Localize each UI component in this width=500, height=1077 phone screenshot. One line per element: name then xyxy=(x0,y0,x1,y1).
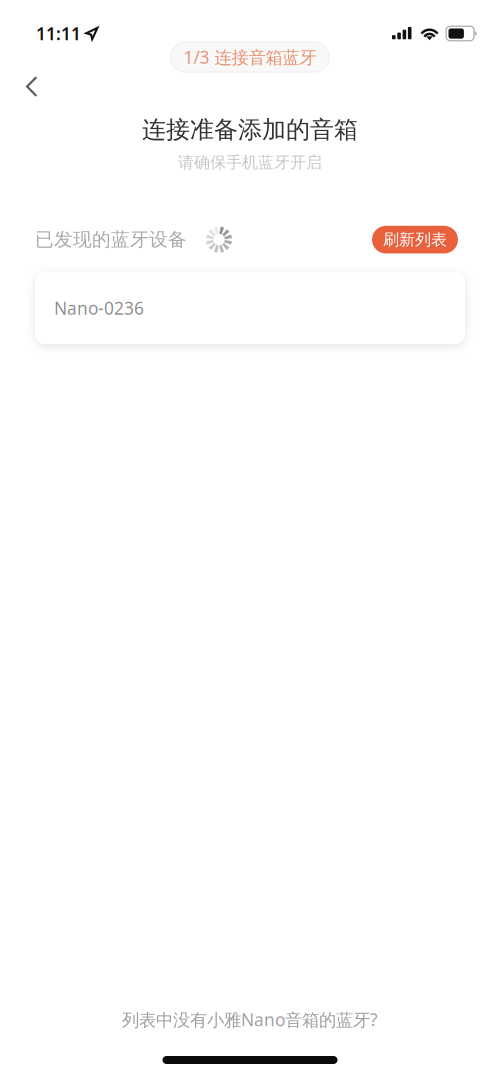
staticText: 连接准备添加的音箱 xyxy=(142,115,358,144)
button[interactable]: 列表中没有小雅Nano音箱的蓝牙? xyxy=(122,1002,378,1037)
button[interactable]: 刷新列表 xyxy=(372,226,458,253)
staticText: 1/3 连接音箱蓝牙 xyxy=(183,45,316,68)
staticText: Nano-0236 xyxy=(54,297,144,320)
staticText: 刷新列表 xyxy=(383,230,447,249)
button[interactable]: Back xyxy=(0,72,55,101)
staticText: 列表中没有小雅Nano音箱的蓝牙? xyxy=(122,1008,378,1031)
staticText: 请确保手机蓝牙开启 xyxy=(178,152,322,172)
staticText: 已发现的蓝牙设备 xyxy=(35,228,187,251)
button[interactable]: Nano-0236 xyxy=(35,272,465,344)
button[interactable]: 1/3 连接音箱蓝牙 xyxy=(170,42,329,72)
staticText: 11:11 xyxy=(36,22,81,45)
